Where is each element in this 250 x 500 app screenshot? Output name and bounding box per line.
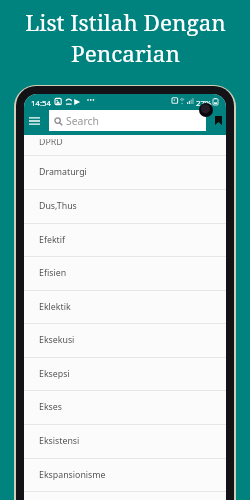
- staticText: Search: [66, 114, 99, 128]
- staticText: Eksekusi: [39, 334, 75, 346]
- button[interactable]: Ekses: [24, 390, 226, 424]
- button[interactable]: Eksekusi: [24, 323, 226, 357]
- staticText: Dus,Thus: [39, 200, 77, 212]
- staticText: Efektif: [39, 234, 66, 246]
- staticText: Eklektik: [39, 301, 71, 313]
- button[interactable]: Eksistensi: [24, 424, 226, 458]
- button[interactable]: Bookmark: [209, 110, 226, 131]
- button[interactable]: DPRD: [24, 135, 226, 155]
- staticText: Ekspansionisme: [39, 469, 106, 481]
- button[interactable]: Dramaturgi: [24, 155, 226, 189]
- button[interactable]: Ekspansionisme: [24, 458, 226, 492]
- staticText: Dramaturgi: [39, 166, 87, 178]
- staticText: Ekses: [39, 401, 62, 413]
- button[interactable]: Efisien: [24, 256, 226, 290]
- staticText: Efisien: [39, 267, 67, 279]
- staticText: DPRD: [39, 139, 63, 145]
- button[interactable]: Dus,Thus: [24, 189, 226, 223]
- staticText: 14:54: [31, 98, 51, 109]
- button[interactable]: Eklektik: [24, 290, 226, 324]
- staticText: Eksepsi: [39, 368, 70, 380]
- button[interactable]: Open navigation menu: [25, 110, 43, 131]
- staticText: Pencarian: [71, 38, 180, 69]
- button[interactable]: Eksepsi: [24, 357, 226, 391]
- staticText: Eksistensi: [39, 435, 80, 447]
- staticText: 27%: [196, 98, 212, 109]
- staticText: List Istilah Dengan: [25, 7, 226, 38]
- button[interactable]: Search: [49, 110, 206, 131]
- button[interactable]: Efektif: [24, 223, 226, 257]
